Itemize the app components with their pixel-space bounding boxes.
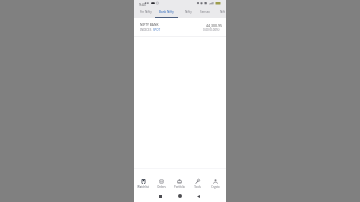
button[interactable]: Back (197, 195, 200, 198)
button[interactable]: Sensex (196, 7, 214, 18)
button[interactable]: Home (178, 194, 182, 198)
staticText: Orders (157, 185, 166, 189)
staticText: Bank Nifty (159, 10, 174, 14)
staticText: Sensex (200, 10, 210, 14)
staticText: Watchlist (137, 185, 149, 189)
staticText: 0.00 (0.00%) (203, 28, 220, 32)
staticText: Tools (194, 185, 201, 189)
button[interactable]: NIFTY BANK (134, 18, 226, 36)
button[interactable]: Tools (188, 168, 206, 190)
button[interactable]: Fin Nifty (137, 7, 155, 18)
staticText: SPOT (153, 28, 161, 32)
button[interactable]: Bank Nifty (155, 7, 178, 18)
staticText: Nift (220, 10, 226, 14)
button[interactable]: Portfolio (170, 168, 188, 190)
staticText: NIFTY BANK (140, 23, 159, 27)
button[interactable]: Orders (152, 168, 170, 190)
staticText: Fin Nifty (140, 10, 152, 14)
staticText: Nifty (185, 10, 192, 14)
button[interactable]: Crypto (206, 168, 224, 190)
staticText: Crypto (211, 185, 220, 189)
button[interactable]: Nift (215, 7, 230, 18)
staticText: INDICES (140, 28, 152, 32)
button[interactable]: Watchlist (134, 168, 152, 190)
button[interactable]: Nifty (181, 7, 196, 18)
staticText: Portfolio (174, 185, 185, 189)
staticText: 9:43 (139, 2, 146, 7)
staticText: 44,300.95 (206, 23, 222, 28)
